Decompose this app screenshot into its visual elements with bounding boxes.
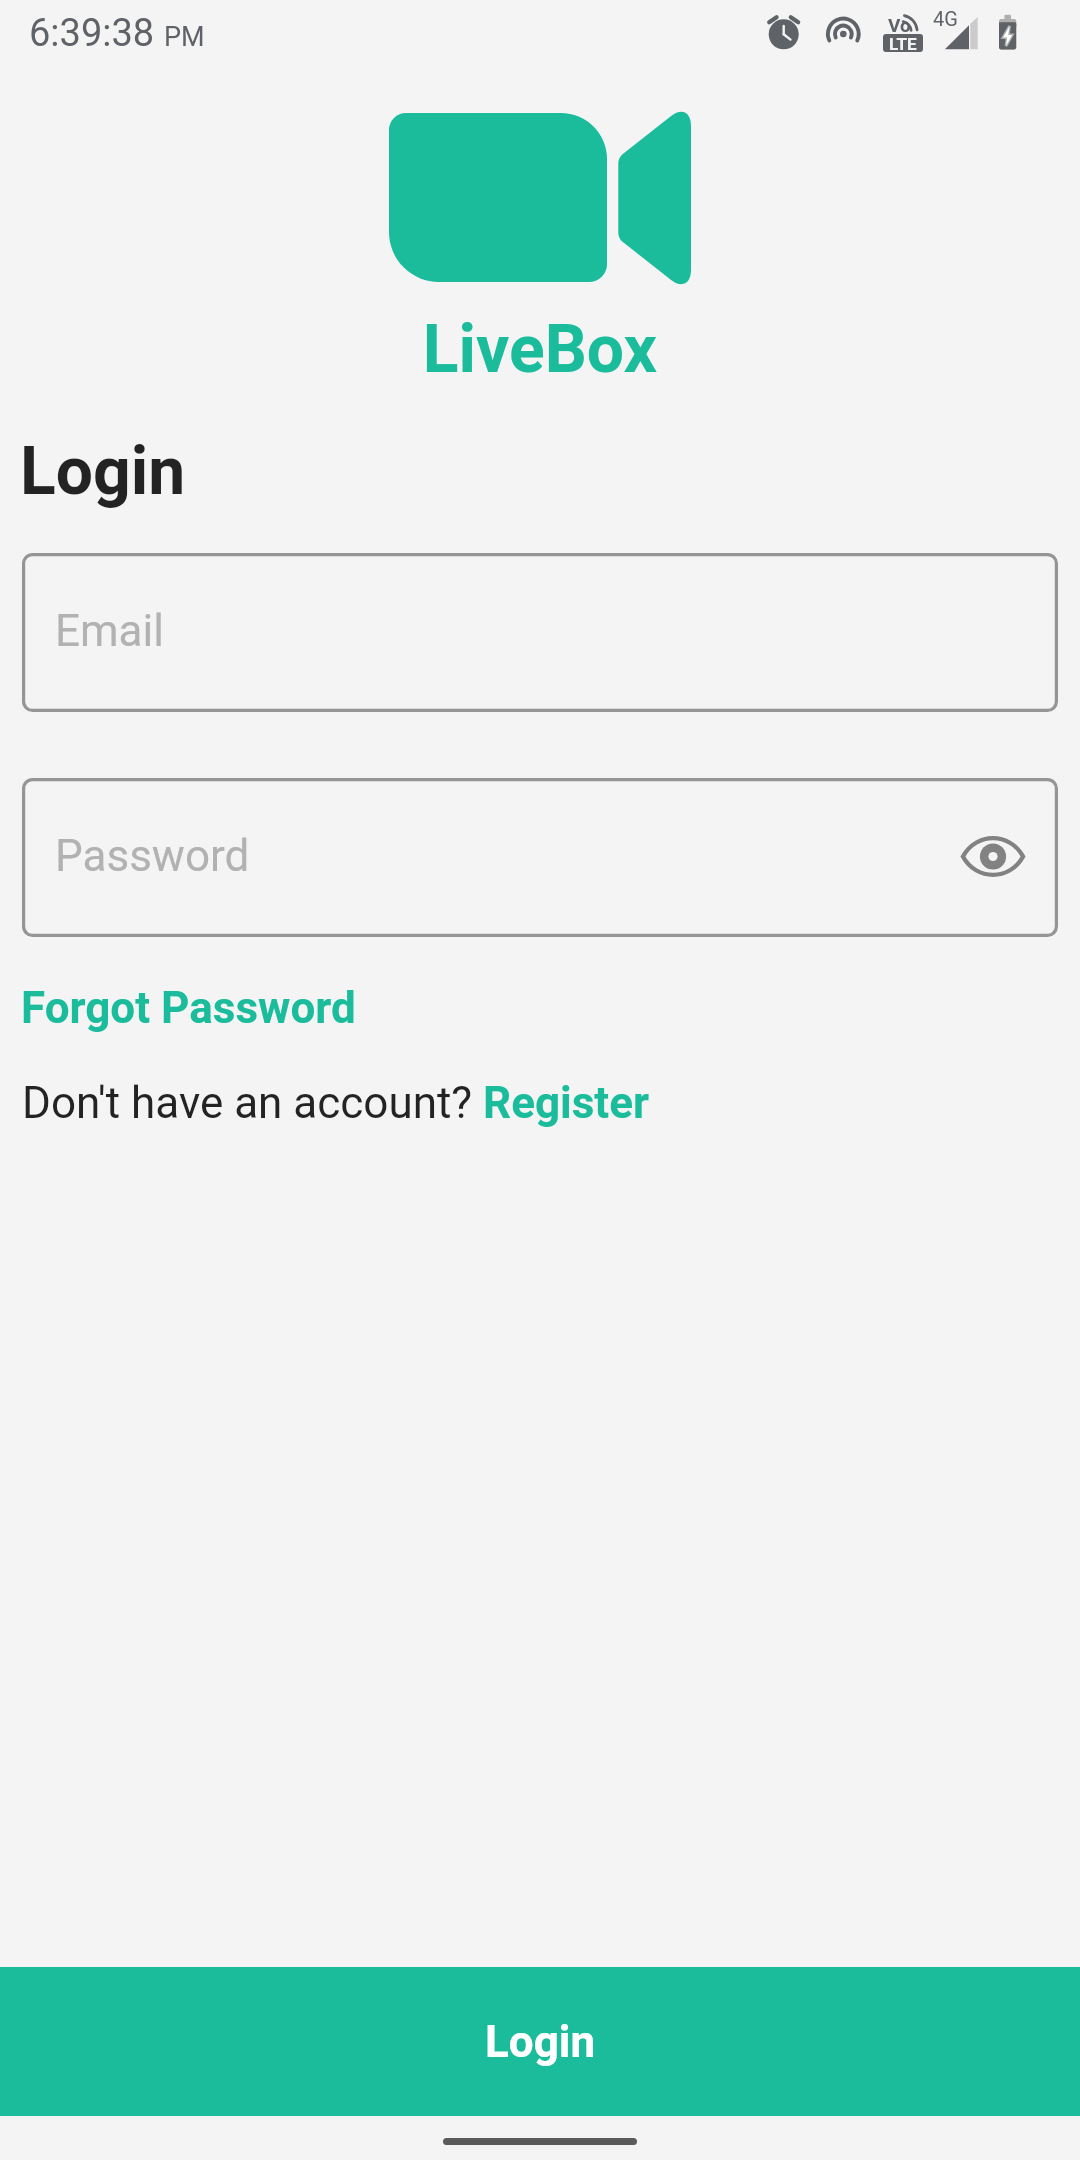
button[interactable]: Don't have an account? Register — [0, 1064, 672, 1142]
other: Hotspot — [822, 12, 866, 56]
staticText: 4G — [933, 7, 958, 30]
staticText: Email — [55, 605, 164, 657]
staticText: Login — [485, 2016, 596, 2068]
staticText: 6:39:38 — [29, 11, 155, 56]
staticText: Forgot Password — [21, 982, 356, 1034]
staticText: LTE — [889, 34, 917, 52]
other: Alarm — [764, 12, 804, 56]
other: Battery charging — [996, 12, 1020, 54]
button[interactable]: Email — [22, 553, 1058, 712]
button[interactable]: Show password — [958, 833, 1028, 880]
staticText: Vo — [888, 14, 911, 36]
staticText: Password — [55, 830, 250, 882]
button[interactable]: Login — [0, 1967, 1080, 2116]
button[interactable]: Forgot Password — [0, 969, 376, 1047]
staticText: Login — [20, 433, 186, 510]
button[interactable]: Password — [22, 778, 1058, 937]
staticText: PM — [164, 21, 205, 53]
staticText: LiveBox — [0, 311, 1080, 388]
staticText: Don't have an account? Register — [22, 1077, 650, 1129]
